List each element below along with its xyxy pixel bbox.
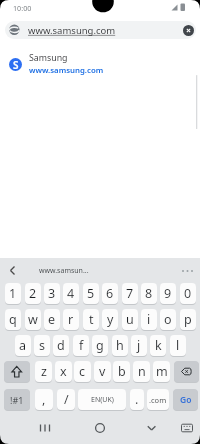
staticText: 1 xyxy=(9,285,17,302)
button[interactable]: S xyxy=(9,52,189,76)
staticText: . xyxy=(135,391,139,408)
staticText: p xyxy=(184,311,192,328)
staticText: g xyxy=(96,337,104,354)
staticText: .com xyxy=(149,395,167,405)
button[interactable] xyxy=(174,361,199,383)
staticText: 3 xyxy=(48,285,56,302)
button[interactable]: www.samsun... xyxy=(39,266,89,276)
button[interactable]: !#1 xyxy=(4,389,30,411)
button[interactable]: 6 xyxy=(102,283,118,305)
button[interactable]: q xyxy=(5,309,21,331)
button[interactable]: 9 xyxy=(160,283,176,305)
button[interactable]: r xyxy=(63,309,79,331)
staticText: m xyxy=(156,363,168,380)
button[interactable]: g xyxy=(92,335,108,357)
button[interactable] xyxy=(4,361,30,383)
button[interactable]: o xyxy=(160,309,176,331)
button[interactable]: , xyxy=(35,389,53,411)
staticText: j xyxy=(137,337,141,354)
staticText: 0 xyxy=(184,285,192,302)
staticText: y xyxy=(107,311,114,328)
staticText: 6 xyxy=(106,285,114,302)
button[interactable]: b xyxy=(113,361,130,383)
staticText: 9 xyxy=(164,285,172,302)
button[interactable] xyxy=(178,262,196,279)
button[interactable]: x xyxy=(55,361,72,383)
staticText: , xyxy=(42,391,46,408)
staticText: c xyxy=(79,363,86,380)
staticText: 2 xyxy=(29,285,37,302)
button[interactable] xyxy=(178,419,196,437)
button[interactable]: a xyxy=(15,335,31,357)
staticText: a xyxy=(19,337,27,354)
button[interactable] xyxy=(36,419,54,437)
staticText: x xyxy=(60,363,67,380)
button[interactable]: h xyxy=(112,335,128,357)
staticText: Go xyxy=(180,394,192,406)
staticText: o xyxy=(164,311,172,328)
button[interactable]: n xyxy=(133,361,150,383)
staticText: 8 xyxy=(145,285,153,302)
button[interactable]: w xyxy=(25,309,41,331)
button[interactable]: f xyxy=(73,335,89,357)
button[interactable]: / xyxy=(57,389,75,411)
button[interactable]: u xyxy=(122,309,138,331)
button[interactable]: 3 xyxy=(44,283,60,305)
button[interactable]: p xyxy=(180,309,196,331)
button[interactable]: 0 xyxy=(180,283,196,305)
button[interactable]: 8 xyxy=(141,283,157,305)
staticText: 5 xyxy=(87,285,95,302)
button[interactable]: t xyxy=(83,309,99,331)
button[interactable]: 2 xyxy=(25,283,41,305)
staticText: n xyxy=(138,363,146,380)
staticText: b xyxy=(118,363,126,380)
button[interactable] xyxy=(4,261,22,279)
staticText: 10:00 xyxy=(13,3,32,13)
button[interactable]: 7 xyxy=(122,283,138,305)
staticText: S xyxy=(13,58,19,71)
button[interactable]: e xyxy=(44,309,60,331)
staticText: www.samsung.com xyxy=(28,24,116,37)
staticText: l xyxy=(176,337,180,354)
staticText: s xyxy=(39,337,45,354)
button[interactable]: k xyxy=(150,335,166,357)
button[interactable] xyxy=(183,25,194,36)
button[interactable]: 5 xyxy=(83,283,99,305)
staticText: !#1 xyxy=(10,394,24,406)
button[interactable]: www.samsung.com xyxy=(5,21,196,39)
button[interactable]: l xyxy=(170,335,186,357)
button[interactable]: s xyxy=(34,335,50,357)
button[interactable]: 1 xyxy=(5,283,21,305)
button[interactable]: m xyxy=(153,361,170,383)
staticText: 4 xyxy=(67,285,75,302)
staticText: v xyxy=(99,363,106,380)
staticText: i xyxy=(147,311,151,328)
button[interactable] xyxy=(142,419,160,437)
button[interactable]: 4 xyxy=(63,283,79,305)
button[interactable]: d xyxy=(53,335,69,357)
staticText: q xyxy=(9,311,17,328)
button[interactable]: z xyxy=(35,361,52,383)
staticText: h xyxy=(116,337,124,354)
button[interactable]: y xyxy=(102,309,118,331)
button[interactable]: v xyxy=(94,361,111,383)
staticText: e xyxy=(48,311,56,328)
staticText: www.samsung.com xyxy=(29,65,104,76)
button[interactable]: i xyxy=(141,309,157,331)
staticText: t xyxy=(89,311,94,328)
button[interactable]: j xyxy=(131,335,147,357)
button[interactable]: . xyxy=(130,389,144,411)
button[interactable] xyxy=(91,419,109,437)
button[interactable]: c xyxy=(74,361,91,383)
staticText: 7 xyxy=(126,285,134,302)
staticText: EN(UK) xyxy=(91,395,114,405)
staticText: u xyxy=(126,311,134,328)
staticText: w xyxy=(28,311,38,328)
button[interactable]: Go xyxy=(173,389,198,411)
staticText: z xyxy=(41,363,47,380)
button[interactable]: .com xyxy=(147,389,169,411)
staticText: k xyxy=(155,337,162,354)
staticText: Samsung xyxy=(29,52,68,64)
button[interactable]: EN(UK) xyxy=(78,389,126,411)
staticText: f xyxy=(79,337,84,354)
